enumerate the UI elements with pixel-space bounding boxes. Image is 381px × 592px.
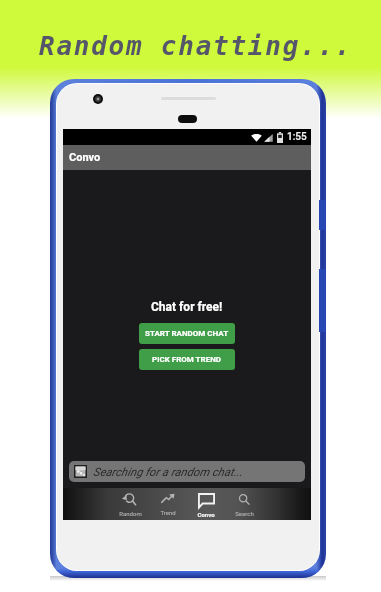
staticText: Convo: [197, 511, 215, 518]
staticText: Search: [235, 510, 254, 517]
staticText: Random: [119, 510, 142, 517]
staticText: Searching for a random chat...: [93, 465, 243, 478]
staticText: Convo: [69, 151, 101, 164]
button[interactable]: Random: [111, 488, 149, 520]
button[interactable]: Searching for a random chat...: [69, 461, 305, 482]
staticText: PICK FROM TREND: [152, 355, 222, 364]
button[interactable]: Trend: [149, 488, 187, 520]
button[interactable]: Convo: [187, 488, 225, 520]
button[interactable]: PICK FROM TREND: [139, 349, 235, 370]
button[interactable]: Search: [225, 488, 263, 520]
staticText: Chat for free!: [151, 300, 223, 314]
staticText: Random chatting...: [39, 31, 353, 61]
button[interactable]: START RANDOM CHAT: [139, 323, 235, 344]
staticText: Trend: [160, 509, 176, 516]
staticText: 1:55: [287, 131, 307, 143]
staticText: START RANDOM CHAT: [145, 329, 229, 338]
